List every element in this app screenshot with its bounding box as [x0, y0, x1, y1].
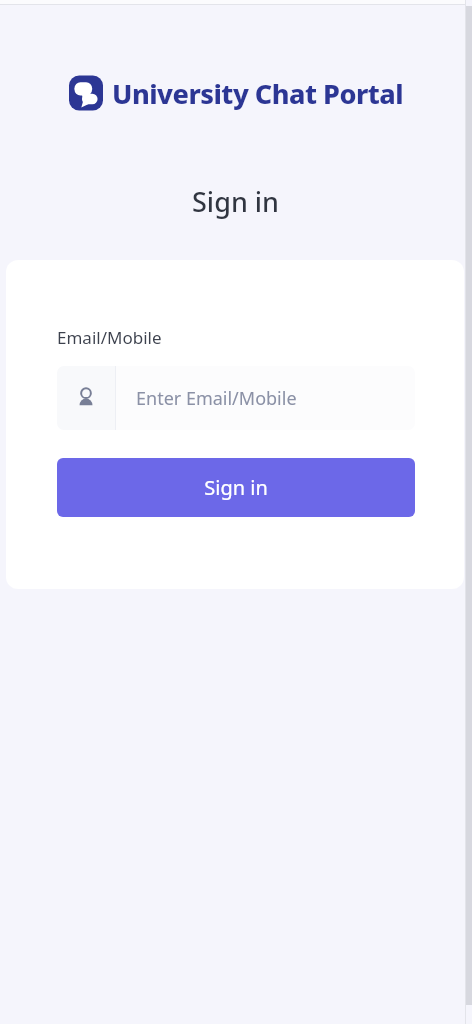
- button[interactable]: Enter Email/Mobile: [57, 366, 415, 430]
- staticText: Sign in: [192, 183, 280, 220]
- staticText: Email/Mobile: [57, 326, 162, 349]
- staticText: Enter Email/Mobile: [136, 386, 297, 411]
- button[interactable]: Sign in: [57, 458, 415, 517]
- staticText: University Chat Portal: [112, 75, 404, 112]
- staticText: Sign in: [204, 474, 268, 501]
- other: University Chat Portal logo: [69, 73, 103, 113]
- button[interactable]: University Chat Portal logo: [69, 73, 404, 113]
